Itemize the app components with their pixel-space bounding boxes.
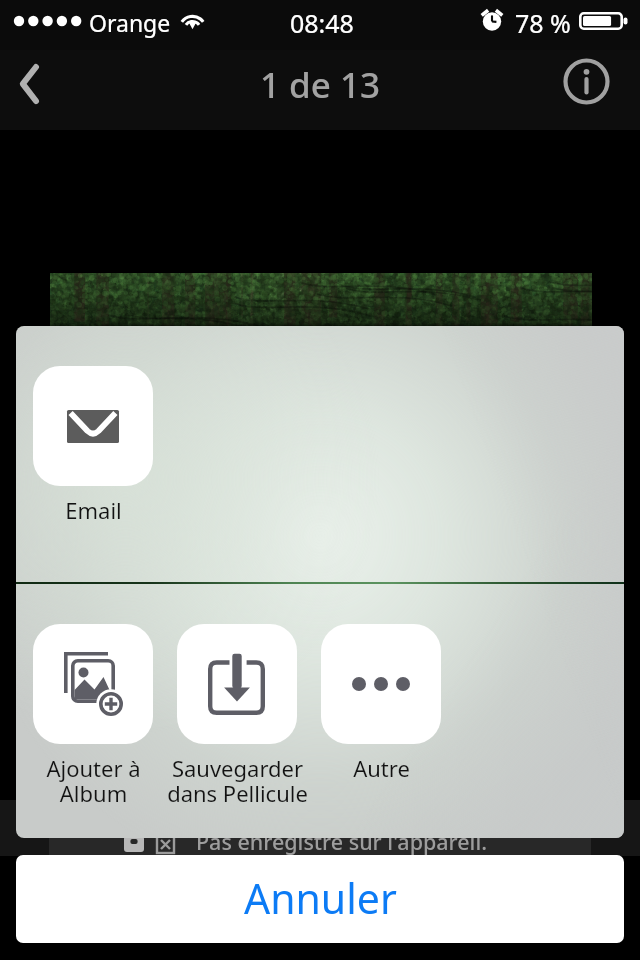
staticText: Ajouter à Album [46, 753, 141, 808]
button[interactable]: Back [0, 50, 64, 130]
staticText: Orange [89, 7, 171, 38]
staticText: 1 de 13 [260, 61, 381, 109]
button[interactable]: Ajouter à Album [16, 624, 171, 808]
staticText: Autre [353, 753, 410, 783]
staticText: 08:48 [290, 6, 354, 40]
button[interactable]: Autre [303, 624, 459, 783]
button[interactable]: Annuler [16, 855, 624, 943]
button[interactable]: Info [556, 50, 618, 130]
staticText: Email [65, 495, 122, 525]
button[interactable]: Email [16, 366, 171, 525]
staticText: 78 % [515, 6, 571, 40]
staticText: Annuler [244, 870, 397, 926]
staticText: Pas enregistré sur l'appareil. [196, 827, 488, 856]
button[interactable]: Sauvegarder dans Pellicule [159, 624, 315, 808]
staticText: Sauvegarder dans Pellicule [167, 753, 308, 808]
